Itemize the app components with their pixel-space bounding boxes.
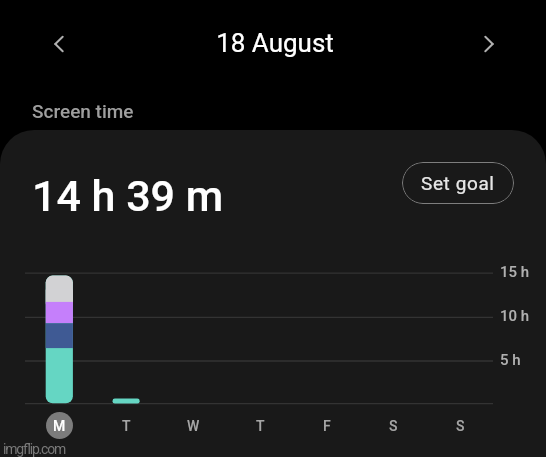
staticText: 14 h 39 m (32, 171, 224, 221)
button[interactable]: S (444, 410, 476, 442)
button[interactable]: Set goal (402, 162, 514, 204)
staticText: 18 August (216, 28, 334, 58)
staticText: W (187, 418, 200, 434)
button[interactable]: Next day (467, 22, 511, 66)
staticText: 15 h (500, 263, 530, 281)
staticText: imgflip.com (3, 441, 66, 457)
button[interactable]: W (177, 410, 209, 442)
staticText: Screen time (32, 100, 134, 122)
staticText: S (389, 418, 398, 434)
staticText: Set goal (421, 172, 495, 194)
staticText: M (53, 418, 66, 434)
button[interactable]: F (311, 410, 343, 442)
staticText: T (122, 418, 131, 434)
button[interactable]: M (46, 412, 73, 439)
staticText: 5 h (500, 351, 521, 369)
staticText: S (456, 418, 465, 434)
staticText: 10 h (500, 307, 530, 325)
button[interactable]: T (244, 410, 276, 442)
staticText: F (323, 418, 331, 434)
button[interactable]: S (377, 410, 409, 442)
staticText: T (256, 418, 265, 434)
button[interactable]: Previous day (37, 22, 81, 66)
button[interactable]: T (110, 410, 142, 442)
